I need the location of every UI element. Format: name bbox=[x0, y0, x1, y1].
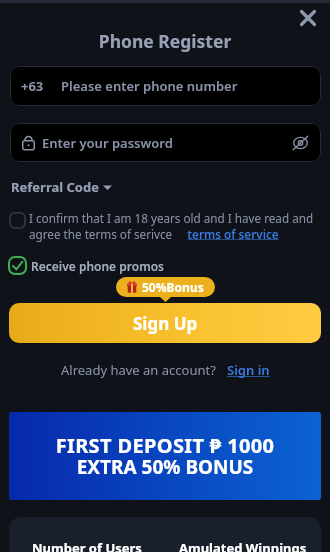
staticText: FIRST DEPOSIT ₱ 1000 bbox=[9, 432, 321, 459]
staticText: Phone Register bbox=[0, 29, 330, 53]
button[interactable]: Receive phone promos bbox=[8, 256, 170, 275]
button[interactable]: 50%Bonus bbox=[116, 277, 215, 297]
staticText: EXTRA 50% BONUS bbox=[9, 454, 321, 480]
staticText: +63 bbox=[21, 77, 44, 95]
staticText: I confirm that I am 18 years old and I h… bbox=[29, 210, 321, 242]
button[interactable]: Sign Up bbox=[9, 303, 321, 343]
button[interactable]: Sign in bbox=[227, 361, 270, 379]
button[interactable]: +63 bbox=[10, 66, 321, 106]
button[interactable]: FIRST DEPOSIT ₱ 1000 bbox=[9, 412, 321, 500]
staticText: Enter your password bbox=[42, 134, 173, 152]
staticText: Receive phone promos bbox=[31, 258, 164, 274]
button[interactable]: Enter your password bbox=[10, 123, 321, 162]
staticText: Referral Code bbox=[11, 178, 99, 196]
staticText: Sign Up bbox=[133, 312, 198, 335]
button[interactable]: Close bbox=[296, 6, 320, 30]
staticText: Sign in bbox=[227, 361, 270, 379]
staticText: Please enter phone number bbox=[61, 77, 238, 95]
button[interactable]: Referral Code bbox=[10, 175, 113, 199]
staticText: Number of Users bbox=[32, 539, 142, 552]
button[interactable]: I confirm that I am 18 years old and I h… bbox=[9, 210, 321, 242]
staticText: Amulated Winnings bbox=[179, 539, 307, 552]
staticText: 50%Bonus bbox=[142, 279, 204, 295]
button[interactable]: Show password bbox=[293, 136, 308, 150]
staticText: Already have an account? bbox=[61, 361, 216, 379]
